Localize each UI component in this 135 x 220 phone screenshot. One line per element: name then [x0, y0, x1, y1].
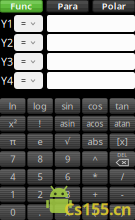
staticText: 3	[65, 188, 70, 201]
button[interactable]: ^	[82, 151, 108, 167]
button[interactable]: Polar	[93, 0, 135, 12]
button[interactable]: 1	[0, 187, 25, 202]
button[interactable]: √	[55, 133, 80, 149]
button[interactable]: 0	[0, 204, 25, 220]
button[interactable]: e	[27, 133, 53, 149]
button[interactable]: sin	[55, 98, 80, 114]
button[interactable]: /	[110, 169, 135, 185]
staticText: Func	[10, 0, 32, 12]
staticText: 5	[38, 170, 43, 183]
button[interactable]: +	[82, 187, 108, 202]
button[interactable]: Y4 function type	[14, 72, 43, 89]
button[interactable]: (	[82, 204, 108, 220]
staticText: Polar	[102, 0, 126, 12]
staticText: Para	[57, 0, 77, 12]
staticText: ln	[9, 100, 17, 112]
button[interactable]: asin	[55, 116, 80, 131]
button[interactable]: 5	[27, 169, 53, 185]
staticText: abs	[87, 135, 102, 147]
staticText: 6	[65, 170, 70, 183]
staticText: 2	[38, 188, 43, 201]
button[interactable]: abs	[82, 133, 108, 149]
button[interactable]: 6	[55, 169, 80, 185]
staticText: Y3	[1, 54, 13, 69]
staticText: atan	[114, 118, 130, 129]
button[interactable]: 2	[27, 187, 53, 202]
staticText: x	[65, 206, 70, 218]
staticText: +	[92, 188, 97, 201]
button[interactable]: 8	[27, 151, 53, 167]
staticText: [x]	[117, 135, 128, 147]
staticText: 9	[65, 153, 70, 165]
button[interactable]: Y4 expression	[47, 72, 135, 89]
staticText: .	[39, 206, 42, 218]
staticText: ^	[92, 153, 97, 165]
staticText: -	[121, 188, 124, 201]
staticText: Cs155.cn	[64, 198, 131, 220]
button[interactable]: Y1 expression	[47, 15, 135, 32]
button[interactable]: .	[27, 204, 53, 220]
staticText: sin	[61, 100, 73, 112]
button[interactable]: π	[0, 133, 25, 149]
staticText: Y2	[1, 35, 13, 50]
staticText: e	[38, 135, 43, 147]
staticText: !	[39, 117, 42, 130]
button[interactable]: x	[55, 204, 80, 220]
button[interactable]: *	[82, 169, 108, 185]
button[interactable]: cos	[82, 98, 108, 114]
staticText: x²	[9, 117, 17, 130]
staticText: acos	[86, 118, 103, 129]
button[interactable]: !	[27, 116, 53, 131]
button[interactable]: x²	[0, 116, 25, 131]
staticText: log	[33, 100, 47, 112]
button[interactable]: Y2 expression	[47, 34, 135, 51]
button[interactable]: [x]	[110, 133, 135, 149]
staticText: 0	[10, 206, 15, 218]
staticText: 7	[10, 153, 15, 165]
staticText: cos	[88, 100, 102, 112]
staticText: asin	[60, 118, 75, 129]
staticText: 4	[10, 170, 15, 183]
staticText: 8	[38, 153, 43, 165]
button[interactable]: Y2 function type	[14, 34, 43, 51]
staticText: 1	[10, 188, 15, 201]
staticText: /	[121, 170, 124, 183]
button[interactable]: Para	[46, 0, 89, 12]
button[interactable]: 7	[0, 151, 25, 167]
staticText: Y1	[1, 16, 13, 31]
button[interactable]: Y1 function type	[14, 15, 43, 32]
button[interactable]: Delete	[110, 151, 135, 167]
button[interactable]: tan	[110, 98, 135, 114]
staticText: Y4	[1, 73, 13, 88]
staticText: DEL	[117, 151, 127, 159]
staticText: π	[10, 135, 16, 147]
button[interactable]: 4	[0, 169, 25, 185]
button[interactable]: 3	[55, 187, 80, 202]
button[interactable]: Func	[0, 0, 42, 12]
button[interactable]: Y3 expression	[47, 53, 135, 70]
staticText: )	[121, 206, 124, 218]
button[interactable]: 9	[55, 151, 80, 167]
button[interactable]: -	[110, 187, 135, 202]
staticText: tan	[115, 100, 129, 112]
button[interactable]: )	[110, 204, 135, 220]
button[interactable]: ln	[0, 98, 25, 114]
staticText: (	[93, 206, 96, 218]
staticText: *	[92, 170, 97, 183]
button[interactable]: acos	[82, 116, 108, 131]
button[interactable]: atan	[110, 116, 135, 131]
button[interactable]: log	[27, 98, 53, 114]
button[interactable]: Y3 function type	[14, 53, 43, 70]
staticText: √	[64, 136, 70, 147]
